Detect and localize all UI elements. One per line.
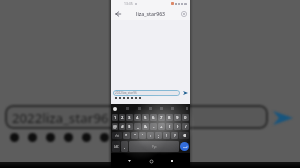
staticText: ) [177,124,179,130]
staticText: liza_star963 [136,10,166,17]
button[interactable]: ? [171,132,178,139]
button[interactable]: 6 [150,114,157,121]
staticText: & [144,124,148,130]
button[interactable]: Recents [169,158,175,164]
button[interactable]: ; [155,132,162,139]
staticText: 8 [168,115,171,121]
button[interactable]: Enter [180,142,189,151]
button[interactable]: 9 [174,114,181,121]
staticText: 2022liza_star96 [115,91,137,95]
staticText: ' [142,133,143,138]
staticText: * [125,133,128,138]
button[interactable]: 2022liza_star96 [113,90,180,96]
button[interactable]: Profile [179,9,188,18]
button[interactable]: & [142,123,149,130]
button[interactable]: 4 [134,114,141,121]
button[interactable]: _ [134,123,141,130]
button[interactable]: 1 [112,114,118,121]
staticText: # [121,124,124,130]
staticText: 9 [176,115,179,121]
button[interactable]: Back [113,9,122,18]
button[interactable]: ( [166,123,173,130]
staticText: @ [113,124,117,130]
button[interactable]: " [131,132,138,139]
button[interactable]: @ [112,123,118,130]
button[interactable]: Home [148,158,154,164]
staticText: Pyc [152,145,157,149]
button[interactable]: 5 [142,114,149,121]
staticText: ( [169,124,171,130]
staticText: / [185,124,187,130]
staticText: " [134,133,136,138]
staticText: ! [166,133,168,138]
button[interactable]: : [147,132,154,139]
button[interactable]: 8 [166,114,173,121]
button[interactable]: ! [163,132,170,139]
button[interactable]: ABC [112,141,120,152]
staticText: 13:35 [124,1,133,6]
staticText: =\< [115,134,119,138]
button[interactable]: 2 [119,114,125,121]
staticText: 6 [152,115,155,121]
button[interactable]: Space [129,141,179,152]
button[interactable]: =\< [112,132,122,139]
button[interactable]: - [150,123,157,130]
button[interactable]: + [158,123,165,130]
button[interactable]: ) [174,123,181,130]
staticText: 4 [136,115,139,121]
button[interactable]: Back [126,158,132,164]
staticText: - [153,124,155,130]
staticText: 1 [114,115,117,121]
button[interactable]: * [123,132,130,139]
staticText: $ [128,124,131,130]
button[interactable]: # [119,123,125,130]
staticText: 0 [184,115,187,121]
staticText: ; [158,133,160,138]
button[interactable]: 3 [126,114,133,121]
staticText: 7 [160,115,163,121]
button[interactable]: Send [182,90,188,96]
button[interactable]: $ [126,123,133,130]
staticText: , [124,144,126,149]
button[interactable]: Backspace [179,132,189,139]
button[interactable]: 0 [182,114,189,121]
staticText: : [150,133,152,138]
staticText: 3 [128,115,131,121]
button[interactable]: ' [139,132,146,139]
staticText: 5 [144,115,147,121]
staticText: 2022liza_star96 [12,109,109,127]
staticText: 2 [121,115,124,121]
button[interactable]: Comma [121,141,128,152]
staticText: + [160,124,163,130]
button[interactable]: / [182,123,189,130]
button[interactable]: 7 [158,114,165,121]
staticText: _ [137,124,139,130]
staticText: ? [174,133,176,138]
staticText: ABC [114,145,119,149]
